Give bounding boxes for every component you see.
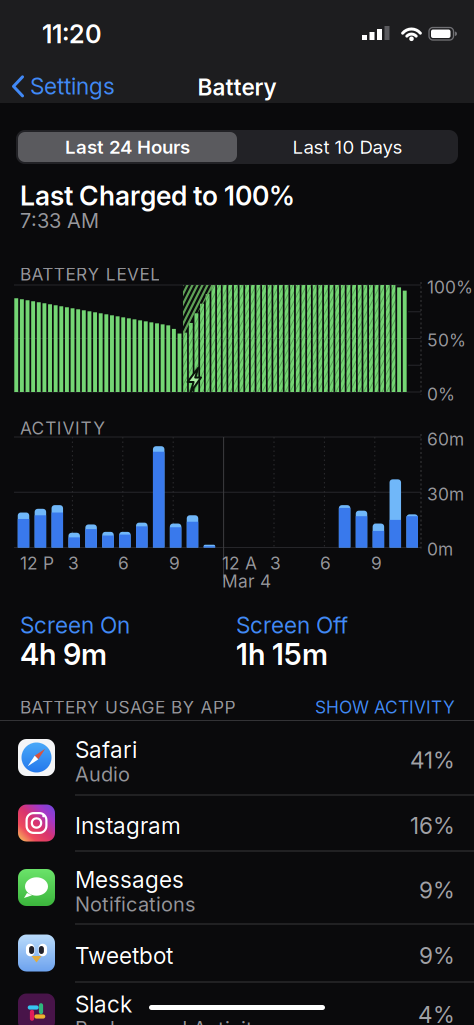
button[interactable]: Slack bbox=[0, 982, 474, 1025]
staticText: 0% bbox=[427, 384, 455, 404]
staticText: 9% bbox=[419, 942, 455, 969]
staticText: ACTIVITY bbox=[20, 418, 105, 438]
staticText: 6 bbox=[118, 553, 129, 573]
staticText: 50% bbox=[427, 330, 466, 350]
staticText: Safari bbox=[75, 736, 137, 763]
staticText: BATTERY USAGE BY APP bbox=[20, 697, 235, 717]
staticText: Last Charged to 100% bbox=[20, 180, 295, 211]
button[interactable]: SHOW ACTIVITY bbox=[0, 0, 455, 717]
button[interactable]: Safari bbox=[0, 720, 474, 795]
staticText: 9% bbox=[419, 877, 455, 904]
staticText: 12 P bbox=[20, 553, 54, 573]
staticText: 1h 15m bbox=[236, 637, 328, 672]
staticText: 7:33 AM bbox=[20, 209, 99, 233]
button[interactable]: Messages bbox=[0, 851, 474, 924]
staticText: SHOW ACTIVITY bbox=[315, 697, 455, 717]
staticText: 9 bbox=[371, 553, 382, 573]
staticText: Tweetbot bbox=[75, 942, 173, 969]
staticText: Background Activity bbox=[75, 1017, 264, 1025]
staticText: 3 bbox=[270, 553, 281, 573]
staticText: 0m bbox=[427, 539, 453, 559]
staticText: 16% bbox=[410, 812, 455, 839]
staticText: 12 A bbox=[222, 553, 257, 573]
staticText: Settings bbox=[30, 73, 115, 100]
staticText: 60m bbox=[427, 429, 464, 449]
staticText: 3 bbox=[68, 553, 79, 573]
button[interactable]: Last 10 Days bbox=[239, 132, 456, 162]
staticText: 30m bbox=[427, 484, 464, 504]
staticText: Screen Off bbox=[236, 612, 348, 639]
staticText: 4h 9m bbox=[20, 637, 107, 672]
staticText: 11:20 bbox=[42, 19, 102, 49]
staticText: 4% bbox=[418, 1001, 455, 1025]
button[interactable]: Back to Settings bbox=[13, 73, 115, 100]
button[interactable]: Last 24 Hours bbox=[18, 132, 237, 162]
staticText: Slack bbox=[75, 991, 132, 1018]
staticText: Last 10 Days bbox=[292, 136, 402, 158]
staticText: Mar 4 bbox=[222, 571, 271, 591]
staticText: Last 24 Hours bbox=[65, 136, 190, 158]
staticText: 6 bbox=[320, 553, 331, 573]
button[interactable]: Tweetbot bbox=[0, 924, 474, 982]
button[interactable]: Instagram bbox=[0, 795, 474, 851]
staticText: BATTERY LEVEL bbox=[20, 264, 160, 284]
staticText: Audio bbox=[75, 762, 130, 786]
staticText: Screen On bbox=[20, 612, 130, 639]
staticText: 100% bbox=[427, 277, 473, 297]
staticText: 9 bbox=[169, 553, 180, 573]
staticText: Instagram bbox=[75, 812, 181, 839]
staticText: Messages bbox=[75, 866, 184, 893]
staticText: 41% bbox=[410, 747, 455, 774]
staticText: Notifications bbox=[75, 892, 195, 916]
staticText: Battery bbox=[197, 74, 276, 101]
